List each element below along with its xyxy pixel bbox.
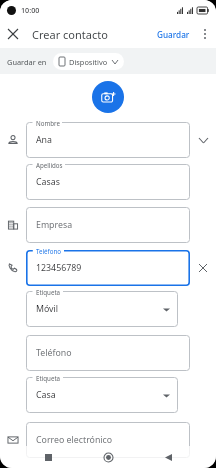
button[interactable]: Cerrar [0,21,26,47]
button[interactable]: Etiqueta [26,291,178,327]
staticText: Empresa [36,219,73,231]
button[interactable]: Nombre [26,122,190,158]
button[interactable]: Borrar teléfono [190,253,216,283]
other: Empresa [7,219,19,231]
staticText: Correo electrónico [36,434,113,446]
staticText: Etiqueta [36,288,61,296]
staticText: Apellidos [36,161,63,169]
button[interactable]: Correo electrónico [26,422,190,458]
staticText: Guardar en [7,57,47,67]
staticText: Móvil [36,303,59,315]
button[interactable]: Más campos de nombre [190,122,216,158]
button[interactable]: Guardar [153,26,194,43]
other: Nombre [7,134,19,146]
button[interactable]: Dispositivo [53,53,124,70]
staticText: 10:00 [21,5,40,15]
other: Teléfono [7,262,19,274]
staticText: Etiqueta [36,374,61,382]
staticText: Ana [36,134,52,146]
button[interactable]: Teléfono [26,335,190,371]
button[interactable]: Empresa [26,207,190,243]
staticText: 123456789 [36,262,82,274]
button[interactable]: Recientes [36,446,60,468]
staticText: Casa [36,389,56,401]
button[interactable]: Apellidos [26,164,190,200]
staticText: Dispositivo [69,57,108,67]
staticText: Crear contacto [32,27,108,42]
button[interactable]: Teléfono [26,250,190,286]
staticText: Guardar [157,29,190,40]
staticText: Teléfono [36,247,62,255]
staticText: Nombre [36,119,60,127]
button[interactable]: Añadir foto [92,81,124,113]
button[interactable]: Atrás [156,446,180,468]
button[interactable]: Más opciones [194,23,216,45]
other: Correo electrónico [7,434,19,446]
button[interactable]: Etiqueta [26,377,178,413]
staticText: Casas [36,176,60,188]
staticText: Teléfono [36,347,72,359]
button[interactable]: Inicio [96,446,120,468]
